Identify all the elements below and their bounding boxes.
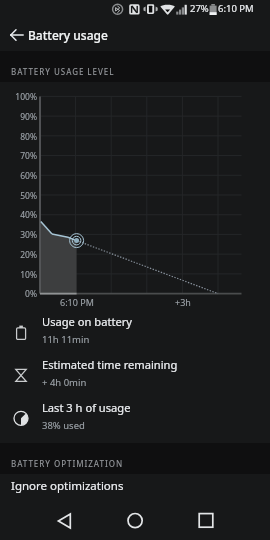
staticText: 100% [0, 91, 37, 103]
button[interactable]: Home [120, 506, 150, 536]
staticText: BATTERY USAGE LEVEL [11, 66, 115, 77]
staticText: 50% [0, 190, 37, 202]
staticText: 6:10 PM [218, 2, 254, 15]
button[interactable]: Estimated time remaining [0, 354, 270, 397]
staticText: 6:10 PM [60, 296, 94, 308]
staticText: 70% [0, 150, 37, 162]
staticText: 60% [0, 170, 37, 182]
staticText: Estimated time remaining [42, 357, 178, 372]
staticText: 20% [0, 249, 37, 261]
staticText: Battery usage [28, 27, 108, 43]
staticText: 0% [0, 288, 37, 300]
button[interactable]: Back [49, 506, 79, 536]
staticText: Usage on battery [42, 314, 132, 329]
button[interactable]: Last 3 h of usage [0, 397, 270, 440]
staticText: 27% [190, 2, 209, 15]
staticText: 10% [0, 269, 37, 281]
staticText: BATTERY OPTIMIZATION [11, 458, 124, 469]
button[interactable]: Ignore optimizations [0, 471, 270, 501]
staticText: + 4h 0min [42, 376, 87, 389]
staticText: Ignore optimizations [11, 478, 124, 494]
staticText: 80% [0, 131, 37, 143]
staticText: +3h [175, 296, 191, 308]
staticText: 30% [0, 229, 37, 241]
staticText: 40% [0, 209, 37, 221]
staticText: 11h 11min [42, 333, 90, 346]
button[interactable]: Recent apps [191, 506, 221, 536]
staticText: 38% used [42, 419, 85, 432]
button[interactable]: Usage on battery [0, 311, 270, 354]
staticText: 90% [0, 111, 37, 123]
staticText: Last 3 h of usage [42, 400, 131, 415]
button[interactable]: Navigate up [3, 21, 31, 49]
